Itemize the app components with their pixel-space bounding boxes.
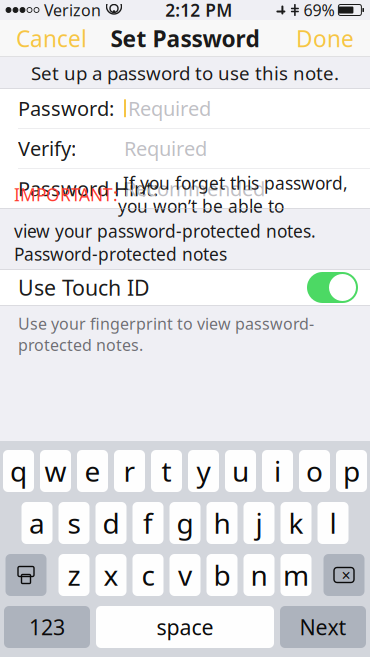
staticText: f <box>143 504 153 542</box>
staticText: space <box>156 613 213 641</box>
button[interactable]: f <box>132 502 163 544</box>
button[interactable]: l <box>317 502 348 544</box>
staticText: q <box>10 452 27 490</box>
button[interactable]: n <box>243 554 274 596</box>
button[interactable]: c <box>132 554 163 596</box>
button[interactable]: i <box>262 450 293 492</box>
button[interactable]: v <box>169 554 200 596</box>
button[interactable]: t <box>151 450 182 492</box>
staticText: Use your fingerprint to view password-pr… <box>18 313 314 355</box>
staticText: Set Password <box>110 23 259 53</box>
staticText: Password Hint: <box>18 175 158 202</box>
staticText: Recommended <box>124 175 265 202</box>
button[interactable]: x <box>95 554 126 596</box>
button[interactable]: h <box>206 502 237 544</box>
button[interactable]: Next <box>280 606 366 648</box>
staticText: j <box>255 504 262 542</box>
staticText: Verify: <box>18 135 76 162</box>
staticText: Verizon <box>44 0 101 21</box>
staticText: m <box>283 556 309 594</box>
staticText: 2:12 PM <box>165 0 232 21</box>
staticText: k <box>288 504 303 542</box>
staticText: Password: <box>18 95 114 122</box>
button[interactable]: k <box>280 502 311 544</box>
staticText: x <box>103 556 118 594</box>
staticText: i <box>274 452 281 490</box>
button[interactable]: 123 <box>4 606 90 648</box>
button[interactable]: d <box>95 502 126 544</box>
button[interactable]: Cancel <box>6 20 97 56</box>
button[interactable]: o <box>299 450 330 492</box>
button[interactable]: y <box>188 450 219 492</box>
button[interactable]: b <box>206 554 237 596</box>
staticText: If you forget this password, you won’t b… <box>118 171 348 217</box>
staticText: Use Touch ID <box>18 273 150 302</box>
staticText: s <box>67 504 80 542</box>
staticText: u <box>232 452 249 490</box>
staticText: view your password-protected notes. Pass… <box>14 219 316 265</box>
staticText: are only visible on devices with iOS 9.3… <box>14 267 333 313</box>
staticText: l <box>329 504 336 542</box>
staticText: n <box>250 556 267 594</box>
staticText: r <box>123 452 135 490</box>
staticText: g <box>176 504 193 542</box>
staticText: v <box>178 556 192 594</box>
staticText: z <box>67 556 80 594</box>
staticText: d <box>102 504 119 542</box>
staticText: h <box>213 504 230 542</box>
staticText: w <box>44 452 66 490</box>
button[interactable]: m <box>280 554 311 596</box>
staticText: Required <box>128 95 211 122</box>
staticText: 69% <box>303 0 334 21</box>
button[interactable]: Shift <box>5 554 46 596</box>
button[interactable]: z <box>58 554 89 596</box>
staticText: p <box>343 452 360 490</box>
staticText: t <box>161 452 171 490</box>
staticText: b <box>213 556 230 594</box>
button[interactable]: e <box>77 450 108 492</box>
button[interactable]: Delete <box>323 554 364 596</box>
staticText: e <box>84 452 100 490</box>
staticText: c <box>141 556 154 594</box>
staticText: Done <box>296 23 354 53</box>
button[interactable]: g <box>169 502 200 544</box>
button[interactable]: u <box>225 450 256 492</box>
staticText: a <box>29 504 45 542</box>
button[interactable]: j <box>243 502 274 544</box>
staticText: Required <box>124 135 207 162</box>
staticText: o <box>306 452 323 490</box>
staticText: 123 <box>29 613 65 641</box>
button[interactable]: w <box>40 450 71 492</box>
button[interactable]: p <box>336 450 367 492</box>
button[interactable]: q <box>3 450 34 492</box>
button[interactable]: Use Touch ID <box>0 270 370 305</box>
button[interactable]: space <box>96 606 274 648</box>
staticText: IMPORTANT: <box>14 183 118 206</box>
staticText: y <box>196 452 210 490</box>
staticText: Set up a password to use this note. <box>31 61 339 85</box>
button[interactable]: a <box>21 502 52 544</box>
staticText: Cancel <box>16 23 87 53</box>
button[interactable]: r <box>114 450 145 492</box>
button[interactable]: s <box>58 502 89 544</box>
staticText: × <box>341 564 350 586</box>
button[interactable]: Done <box>286 20 364 56</box>
staticText: Next <box>299 613 346 641</box>
